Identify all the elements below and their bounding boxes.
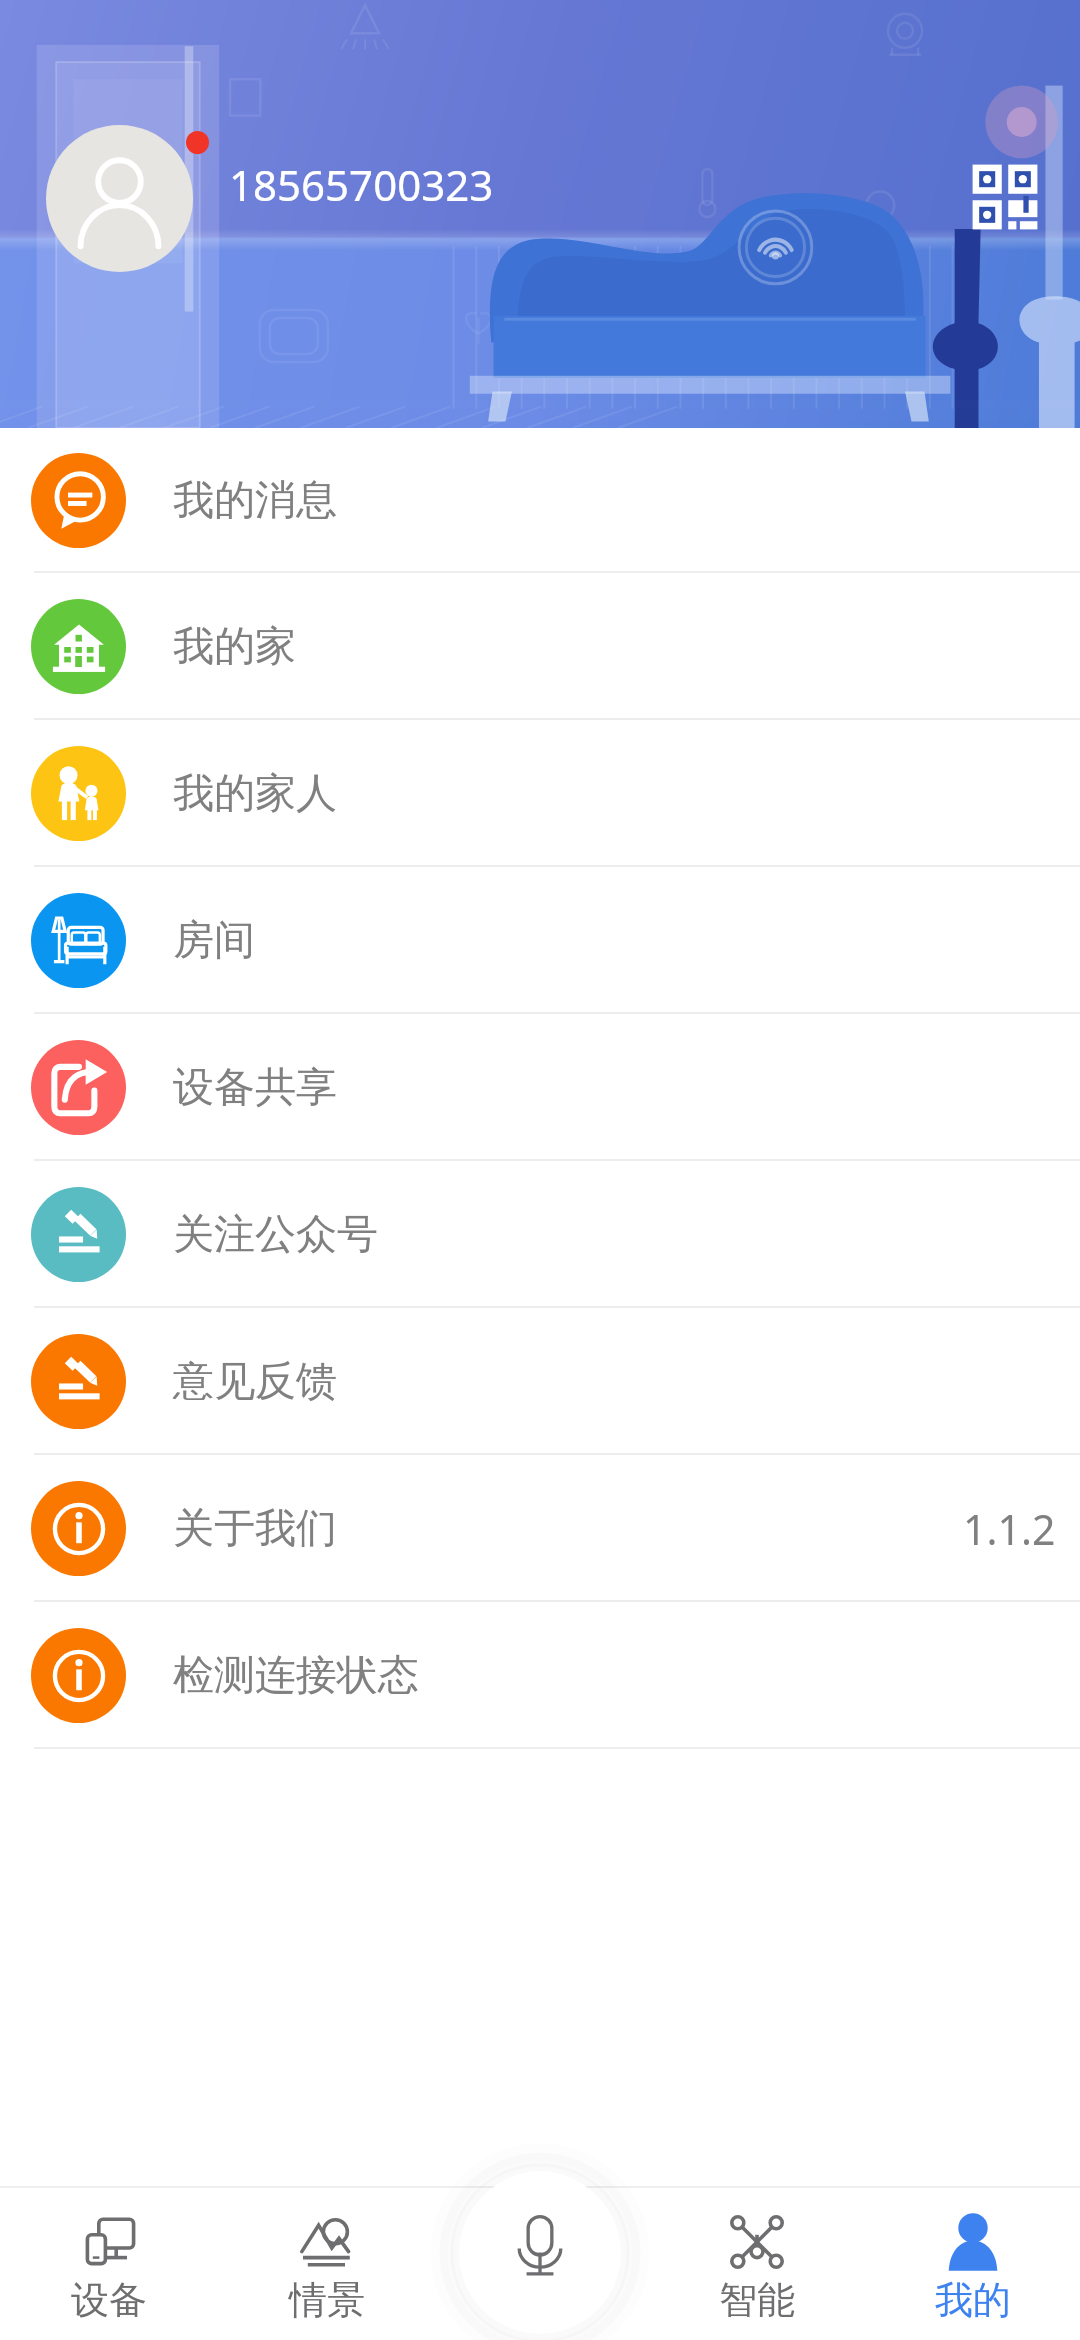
staticText: 1.1.2 — [963, 1501, 1056, 1557]
staticText: 设备共享 — [173, 1062, 337, 1114]
button[interactable]: 设备共享 — [0, 1014, 1080, 1161]
staticText: 我的 — [935, 2276, 1011, 2324]
button[interactable]: Voice assistant — [465, 2171, 615, 2321]
button[interactable]: 意见反馈 — [0, 1308, 1080, 1455]
button[interactable]: 情景 — [218, 2212, 436, 2340]
button[interactable]: 关注公众号 — [0, 1161, 1080, 1308]
button[interactable]: 我的家人 — [0, 720, 1080, 867]
staticText: 房间 — [173, 915, 255, 967]
button[interactable]: 我的消息 — [0, 428, 1080, 573]
staticText: 关于我们 — [173, 1503, 337, 1555]
staticText: 我的消息 — [173, 475, 337, 527]
button[interactable]: 关于我们 — [0, 1455, 1080, 1602]
button[interactable]: Avatar — [46, 125, 193, 272]
staticText: 情景 — [289, 2276, 365, 2324]
button[interactable]: 智能 — [648, 2212, 866, 2340]
staticText: 18565700323 — [229, 156, 494, 213]
staticText: 检测连接状态 — [173, 1650, 419, 1702]
button[interactable]: 我的 — [866, 2212, 1080, 2340]
button[interactable]: 我的家 — [0, 573, 1080, 720]
button[interactable]: 检测连接状态 — [0, 1602, 1080, 1749]
button[interactable]: 房间 — [0, 867, 1080, 1014]
staticText: 意见反馈 — [173, 1356, 337, 1408]
staticText: 智能 — [719, 2276, 795, 2324]
staticText: 关注公众号 — [173, 1209, 378, 1261]
staticText: 我的家人 — [173, 768, 337, 820]
button[interactable]: 设备 — [0, 2212, 218, 2340]
button[interactable]: Scan QR code — [960, 152, 1050, 242]
staticText: 设备 — [71, 2276, 147, 2324]
staticText: 我的家 — [173, 621, 296, 673]
